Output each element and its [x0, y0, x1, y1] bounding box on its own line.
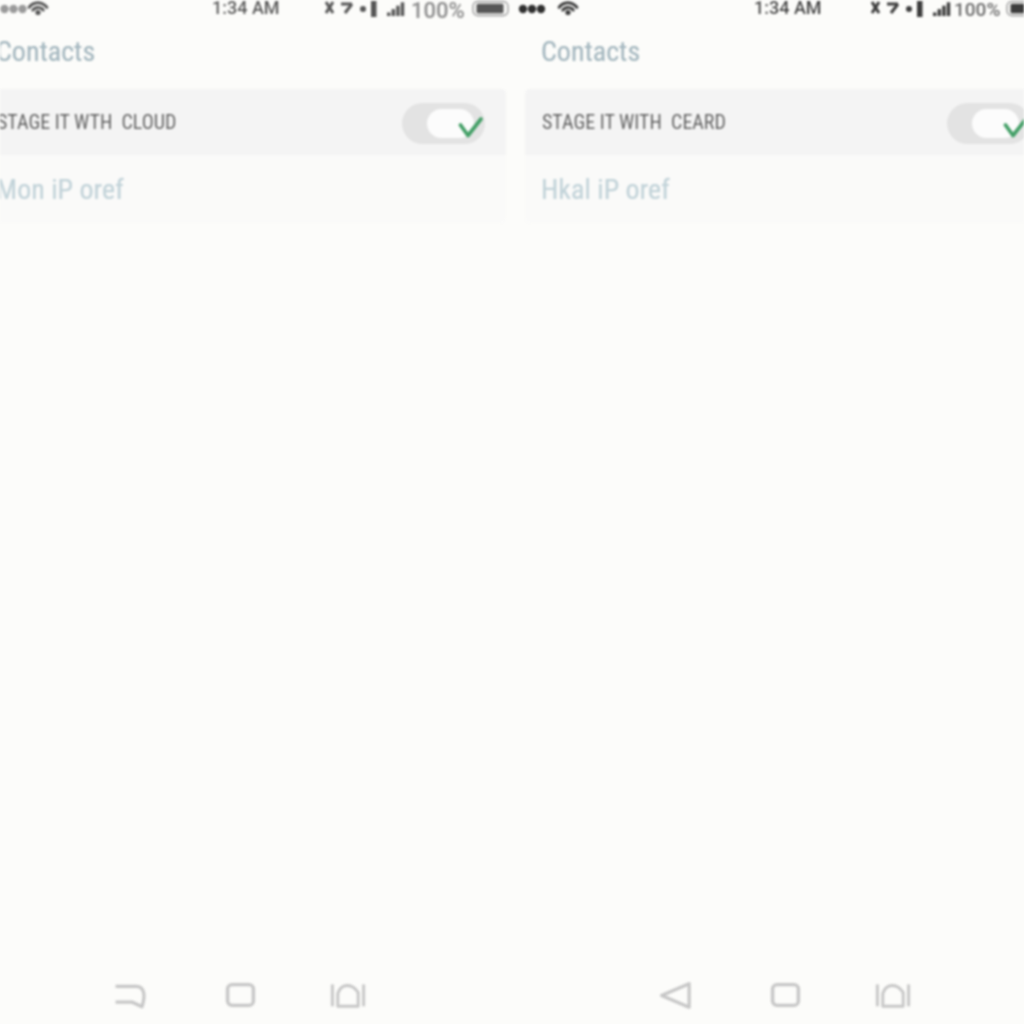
staticText: STAGE IT WTH CLOUD	[0, 110, 177, 133]
button[interactable]: Recents	[755, 965, 815, 1024]
staticText: 100%	[954, 0, 1001, 20]
button[interactable]: Home	[318, 965, 378, 1024]
staticText: Contacts	[541, 35, 641, 68]
button[interactable]: Home	[863, 965, 923, 1024]
button[interactable]: Contacts	[512, 26, 1024, 84]
staticText: 1:34 AM	[212, 0, 280, 18]
button[interactable]: Contacts	[0, 26, 519, 84]
button[interactable]: STAGE IT WTH CLOUD	[0, 89, 506, 155]
staticText: STAGE IT WITH CEARD	[542, 110, 726, 133]
button[interactable]: Hkal iP oref	[525, 155, 1024, 223]
button[interactable]: Back	[645, 965, 705, 1024]
button[interactable]: Back	[100, 965, 160, 1024]
staticText: Mon iP oref	[0, 173, 124, 206]
button[interactable]: Recents	[210, 965, 270, 1024]
button[interactable]: STAGE IT WITH CEARD	[525, 89, 1024, 155]
staticText: 100%	[411, 0, 465, 24]
button[interactable]: Mon iP oref	[0, 155, 506, 223]
button[interactable]: Sync toggle	[947, 103, 1024, 144]
staticText: Hkal iP oref	[541, 173, 670, 206]
staticText: 1:34 AM	[754, 0, 822, 18]
staticText: Contacts	[0, 35, 96, 68]
button[interactable]: Sync toggle	[402, 103, 485, 144]
